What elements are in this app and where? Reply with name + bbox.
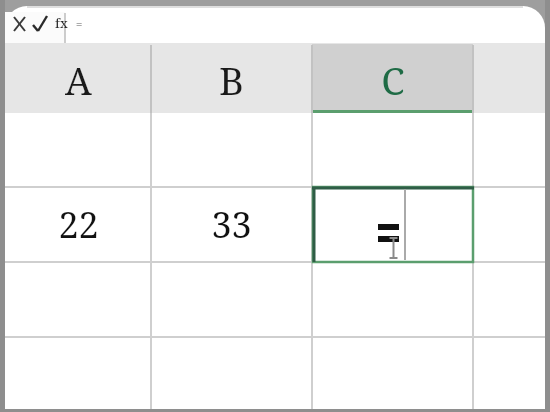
staticText: 22 <box>58 200 99 249</box>
staticText: B <box>219 54 244 106</box>
staticText: C <box>381 54 405 106</box>
staticText: 33 <box>211 200 252 249</box>
button[interactable]: C <box>312 43 473 113</box>
button[interactable]: Enter <box>30 10 52 36</box>
button[interactable]: Cancel <box>8 10 30 36</box>
staticText: = <box>76 16 83 31</box>
button[interactable]: 33 <box>151 187 312 262</box>
staticText: A <box>65 54 92 106</box>
button[interactable] <box>473 43 545 113</box>
button[interactable]: = <box>68 6 538 43</box>
staticText: fx <box>55 14 68 32</box>
button[interactable]: B <box>151 43 312 113</box>
button[interactable]: A <box>5 43 151 113</box>
button[interactable]: 22 <box>5 187 151 262</box>
button[interactable]: Insert function <box>52 10 70 36</box>
